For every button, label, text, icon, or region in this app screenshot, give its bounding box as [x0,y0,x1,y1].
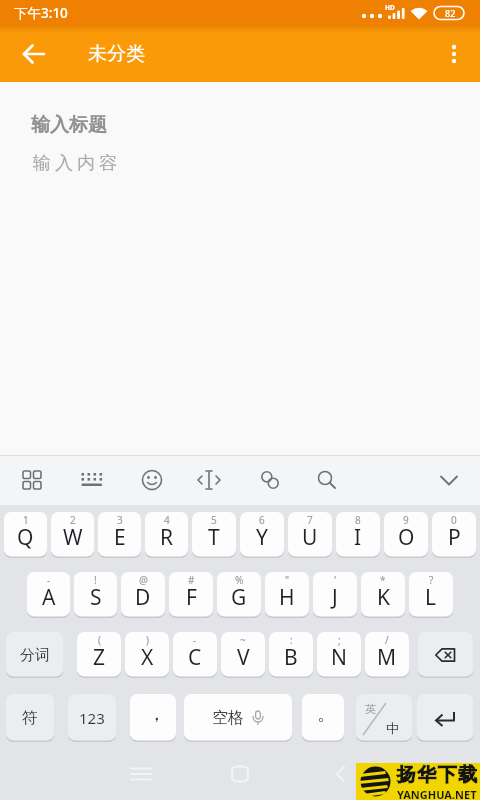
staticText: 8 [355,513,361,527]
button[interactable]: 英 [356,694,412,742]
staticText: Q [17,523,34,552]
button[interactable]: ' [313,572,357,618]
button[interactable]: 空格 [184,694,292,742]
staticText: 1 [23,513,29,527]
button[interactable]: 6 [240,512,284,558]
button[interactable]: 。 [302,694,344,742]
button[interactable]: 5 [192,512,236,558]
button[interactable] [400,455,480,505]
button[interactable]: 2 [51,512,94,558]
button[interactable]: 输入内容 [0,145,480,183]
button[interactable]: 7 [288,512,332,558]
button[interactable] [418,632,473,678]
staticText: C [188,643,202,672]
staticText: - [47,573,51,587]
button[interactable] [0,455,80,505]
staticText: 符 [22,708,38,728]
button[interactable]: : [269,632,313,678]
staticText: - [193,633,197,647]
button[interactable]: ( [77,632,121,678]
button[interactable]: @ [121,572,165,618]
button[interactable] [417,694,473,742]
staticText: B [284,643,298,672]
staticText: 分词 [20,646,50,665]
button[interactable] [80,455,160,505]
button[interactable]: 分词 [6,632,63,678]
button[interactable]: " [265,572,309,618]
staticText: R [160,523,174,552]
button[interactable]: 扬华下载 [356,763,480,800]
button[interactable]: 9 [384,512,428,558]
button[interactable]: 8 [336,512,380,558]
button[interactable]: ) [125,632,169,678]
button[interactable]: * [361,572,405,618]
staticText: T [208,523,220,552]
staticText: 未分类 [88,42,145,66]
staticText: 空格 [212,708,244,728]
button[interactable] [20,40,48,68]
button[interactable]: 0 [432,512,476,558]
staticText: J [332,583,338,612]
button[interactable] [240,455,320,505]
staticText: Y [256,523,268,552]
staticText: ( [98,633,101,647]
button[interactable]: / [365,632,409,678]
button[interactable]: 符 [6,694,54,742]
button[interactable]: ~ [221,632,265,678]
staticText: I [354,523,362,552]
staticText: M [377,643,397,672]
staticText: F [186,583,197,612]
button[interactable]: 4 [145,512,188,558]
button[interactable]: ; [317,632,361,678]
button[interactable] [320,455,400,505]
staticText: P [448,523,461,552]
button[interactable]: ? [409,572,453,618]
button[interactable]: % [217,572,261,618]
button[interactable]: # [169,572,213,618]
button[interactable]: 1 [4,512,47,558]
staticText: O [398,523,415,552]
staticText: YANGHUA.NET [397,787,477,800]
staticText: D [135,583,151,612]
staticText: ? [429,573,434,587]
button[interactable] [160,455,240,505]
staticText: 英 [365,702,376,716]
staticText: ) [146,633,149,647]
staticText: : [290,633,293,647]
staticText: 2 [70,513,76,527]
staticText: 4 [164,513,170,527]
button[interactable] [440,40,468,68]
staticText: E [114,523,126,552]
staticText: V [237,643,250,672]
staticText: * [380,573,386,587]
staticText: # [188,573,195,587]
button[interactable]: ! [74,572,117,618]
button[interactable]: ， [130,694,176,742]
staticText: W [63,523,83,552]
button[interactable]: 123 [68,694,116,742]
staticText: 扬华下载 [396,763,478,787]
staticText: 输入标题 [31,113,107,137]
staticText: X [141,643,154,672]
staticText: L [425,583,437,612]
button[interactable]: - [173,632,217,678]
staticText: @ [139,573,148,587]
staticText: 0 [451,513,457,527]
staticText: 123 [79,708,105,728]
staticText: ~ [240,633,246,647]
staticText: 中 [386,720,399,736]
staticText: 6 [259,513,265,527]
button[interactable]: 输入标题 [0,101,480,145]
staticText: HD [385,3,395,12]
button[interactable]: - [27,572,70,618]
button[interactable] [320,748,480,800]
staticText: ， [147,702,166,726]
button[interactable]: 3 [98,512,141,558]
staticText: " [285,573,290,587]
staticText: ; [338,633,341,647]
staticText: 9 [403,513,409,527]
staticText: Z [93,643,106,672]
staticText: 下午3:10 [14,4,68,22]
